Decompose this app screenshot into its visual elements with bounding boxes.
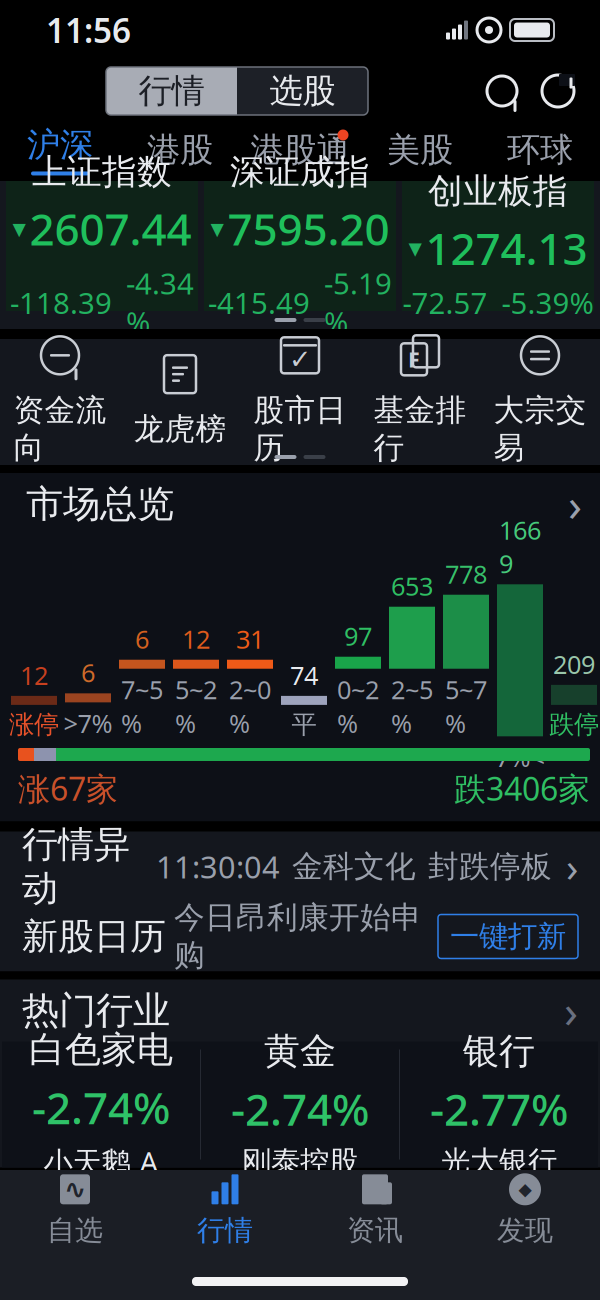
staticText: 12 xyxy=(182,622,210,656)
button[interactable]: 行情 xyxy=(106,67,237,115)
staticText: 74 xyxy=(290,658,318,692)
staticText: -4.34% xyxy=(126,264,194,341)
button[interactable]: 深证成指 xyxy=(204,181,396,311)
staticText: 创业板指 xyxy=(428,170,568,213)
button[interactable]: 上证指数 xyxy=(6,181,198,311)
button[interactable]: 资金流向 xyxy=(0,349,120,449)
button[interactable]: 环球 xyxy=(480,122,600,178)
button[interactable]: 资讯 xyxy=(300,1170,450,1250)
staticText: 跌停 xyxy=(549,709,599,740)
button[interactable]: 新股日历 xyxy=(0,901,600,971)
staticText: 大宗交易 xyxy=(493,391,586,467)
staticText: 白色家电 xyxy=(29,1028,173,1072)
staticText: 股市日历 xyxy=(253,391,346,467)
button[interactable]: 选股 xyxy=(237,67,368,115)
staticText: 封跌停板 xyxy=(428,848,552,885)
staticText: 自选 xyxy=(47,1213,103,1248)
staticText: 黄金 xyxy=(264,1029,336,1073)
staticText: 深证成指 xyxy=(230,150,370,193)
staticText: › xyxy=(566,840,578,893)
staticText: 基金排行 xyxy=(373,391,466,467)
staticText: 涨67家 xyxy=(18,767,118,809)
staticText: 发现 xyxy=(497,1213,553,1248)
button[interactable]: 美股 xyxy=(360,122,480,178)
staticText: 跌3406家 xyxy=(454,767,590,809)
staticText: 12 xyxy=(20,658,48,692)
staticText: 0~2% xyxy=(337,673,379,740)
staticText: ◆ xyxy=(518,1179,531,1199)
staticText: 行情 xyxy=(138,70,204,111)
staticText: F xyxy=(408,345,420,373)
staticText: 涨停 xyxy=(9,709,59,740)
staticText: 2~5% xyxy=(391,673,433,740)
staticText: 美股 xyxy=(387,129,453,170)
button[interactable]: ✓ xyxy=(240,349,360,449)
staticText: ∿ xyxy=(64,1174,86,1204)
staticText: › xyxy=(568,474,582,534)
staticText: 资金流向 xyxy=(13,391,106,467)
staticText: 11:30:04 xyxy=(156,846,280,887)
button[interactable]: 沪深 xyxy=(0,122,120,178)
staticText: ✓ xyxy=(289,344,311,374)
staticText: 11:56 xyxy=(46,8,131,52)
staticText: 光大银行 xyxy=(441,1144,557,1180)
button[interactable]: 龙虎榜 xyxy=(120,349,240,449)
staticText: › xyxy=(564,980,578,1041)
staticText: 热门行业 xyxy=(22,988,170,1033)
button[interactable]: 银行 xyxy=(400,1041,598,1167)
staticText: 平 xyxy=(291,709,316,740)
staticText: 209 xyxy=(553,647,595,681)
staticText: -415.49 xyxy=(208,283,310,322)
staticText: 新股日历 xyxy=(22,914,166,959)
button[interactable]: 大宗交易 xyxy=(480,349,600,449)
button[interactable]: 港股 xyxy=(120,122,240,178)
button[interactable]: 行情 xyxy=(150,1170,300,1250)
staticText: -2.74% xyxy=(32,1078,170,1136)
staticText: 港股通 xyxy=(250,129,349,170)
staticText: ▾ xyxy=(408,233,421,263)
staticText: 行情异动 xyxy=(22,822,130,911)
staticText: 1669 xyxy=(499,513,541,580)
staticText: 环球 xyxy=(507,129,573,170)
staticText: 今日昂利康开始申购 xyxy=(174,899,422,974)
staticText: -118.39 xyxy=(10,283,112,322)
staticText: -72.57 xyxy=(402,283,487,322)
staticText: 市场总览 xyxy=(26,481,174,527)
staticText: 一键打新 xyxy=(450,918,566,954)
staticText: 沪深 xyxy=(27,124,93,165)
button[interactable]: 创业板指 xyxy=(402,181,594,311)
button[interactable]: 港股通 xyxy=(240,122,360,178)
staticText: 2607.44 xyxy=(29,199,191,257)
staticText: -2.74% xyxy=(231,1079,369,1138)
staticText: 6 xyxy=(81,656,95,689)
button[interactable]: 市场总览 xyxy=(4,473,600,535)
staticText: 5~7% xyxy=(445,673,487,740)
button[interactable]: 刷新 xyxy=(530,63,586,119)
button[interactable]: F xyxy=(360,349,480,449)
button[interactable]: 黄金 xyxy=(201,1041,399,1167)
staticText: -2.77% xyxy=(430,1079,568,1138)
button[interactable]: 搜索 xyxy=(474,63,530,119)
button[interactable]: ∿ xyxy=(0,1170,150,1250)
staticText: 上证指数 xyxy=(32,150,172,193)
staticText: 1274.13 xyxy=(425,219,587,277)
staticText: 7~5% xyxy=(121,673,163,740)
staticText: 港股 xyxy=(147,129,213,170)
staticText: 行情 xyxy=(197,1213,253,1248)
staticText: 7595.20 xyxy=(227,199,389,257)
staticText: 龙虎榜 xyxy=(133,410,226,448)
button[interactable]: 白色家电 xyxy=(2,1041,200,1167)
staticText: 资讯 xyxy=(347,1213,403,1248)
button[interactable]: 热门行业 xyxy=(0,979,600,1041)
staticText: 刚泰控股 xyxy=(242,1144,358,1180)
staticText: 选股 xyxy=(269,70,335,111)
staticText: ▾ xyxy=(210,213,223,243)
button[interactable]: 行情异动 xyxy=(0,831,600,901)
staticText: ▾ xyxy=(12,213,25,243)
staticText: 金科文化 xyxy=(292,848,416,885)
button[interactable]: ◆ xyxy=(450,1170,600,1250)
staticText: 银行 xyxy=(463,1029,535,1073)
staticText: 小天鹅 A xyxy=(43,1142,158,1181)
staticText: 31 xyxy=(236,622,264,656)
staticText: 7%< xyxy=(495,740,544,774)
